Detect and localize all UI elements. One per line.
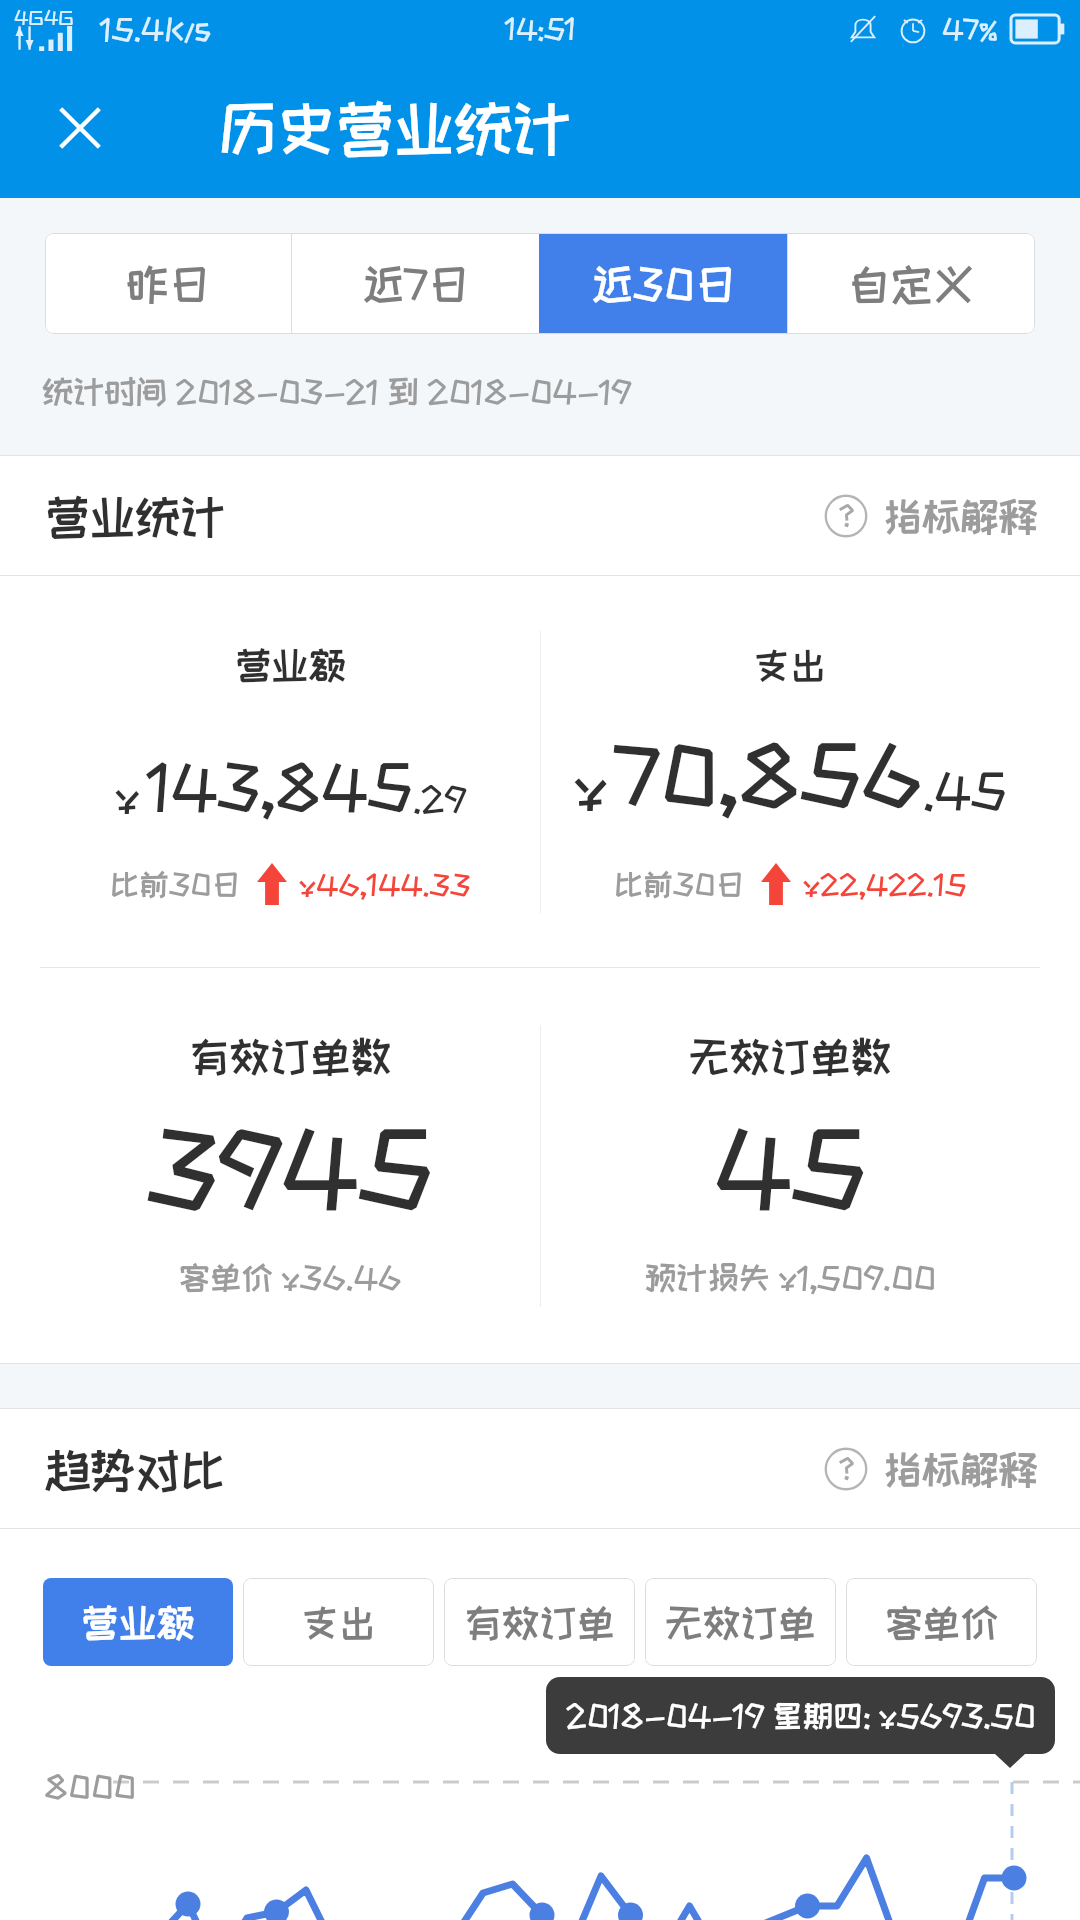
staticText: 比前30日	[110, 868, 241, 900]
staticText: 趋势对比	[45, 1445, 226, 1494]
staticText: 支出	[753, 645, 827, 685]
staticText: 历史营业统计	[218, 96, 572, 160]
staticText: 营业额	[81, 1602, 195, 1643]
staticText: 昨日	[126, 261, 211, 307]
staticText: 有效订单	[464, 1602, 615, 1643]
button[interactable]: 近30日	[540, 233, 787, 334]
staticText: ¥22,422.15	[803, 869, 967, 900]
staticText: 指标解释	[883, 495, 1038, 537]
staticText: 8000	[44, 1769, 136, 1803]
staticText: 近7日	[362, 261, 470, 307]
staticText: 无效订单数	[689, 1034, 892, 1078]
staticText: 3945	[147, 1114, 433, 1222]
staticText: ?	[840, 1454, 853, 1482]
staticText: ¥	[115, 773, 140, 818]
staticText: 15.4K/s	[100, 13, 212, 45]
staticText: 70,856	[615, 730, 923, 818]
staticText: 4G	[14, 7, 44, 27]
button[interactable]: 营业额	[43, 1578, 233, 1666]
staticText: .29	[413, 780, 466, 817]
staticText: 47%	[942, 14, 998, 44]
button[interactable]: ?	[823, 493, 1038, 539]
button[interactable]: 自定义	[788, 233, 1035, 334]
staticText: ¥46,144.33	[299, 869, 471, 900]
staticText: ¥	[574, 756, 608, 817]
staticText: 2018-04-19 星期四: ¥5693.50	[566, 1699, 1036, 1732]
button[interactable]: 近7日	[292, 233, 539, 334]
staticText: 近30日	[591, 261, 737, 307]
staticText: 营业统计	[45, 492, 226, 541]
staticText: 支出	[301, 1602, 377, 1643]
staticText: 客单价 ¥36.46	[179, 1260, 402, 1294]
staticText: 营业额	[235, 645, 346, 685]
staticText: 14:51	[505, 14, 576, 44]
button[interactable]: ?	[823, 1446, 1038, 1492]
staticText: 4G	[44, 7, 74, 27]
staticText: 统计时间 2018-03-21 到 2018-04-19	[42, 374, 632, 408]
button[interactable]: 有效订单	[444, 1578, 635, 1666]
button[interactable]: Close	[38, 86, 122, 170]
staticText: 143,845	[147, 754, 413, 819]
staticText: 自定义	[848, 261, 975, 307]
button[interactable]: 支出	[243, 1578, 434, 1666]
staticText: 指标解释	[883, 1448, 1038, 1490]
button[interactable]: 客单价	[846, 1578, 1037, 1666]
staticText: 比前30日	[614, 868, 745, 900]
button[interactable]: 昨日	[45, 233, 291, 334]
staticText: 45	[714, 1114, 867, 1222]
staticText: 预计损失 ¥1,509.00	[645, 1260, 936, 1294]
staticText: 客单价	[885, 1602, 999, 1643]
staticText: 无效订单	[665, 1602, 816, 1643]
staticText: ?	[840, 501, 853, 529]
staticText: 有效订单数	[189, 1034, 392, 1078]
staticText: .45	[923, 765, 1007, 816]
button[interactable]: 无效订单	[645, 1578, 836, 1666]
